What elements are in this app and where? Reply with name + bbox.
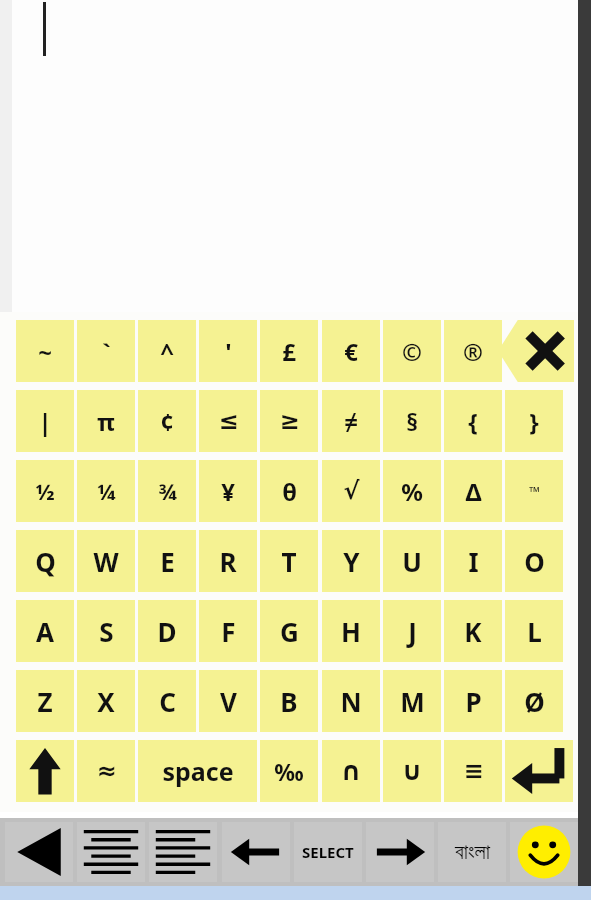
button[interactable]: H [322, 600, 380, 662]
button[interactable]: ≡ [444, 740, 502, 802]
button[interactable]: π [77, 390, 135, 452]
staticText: ∪ [401, 756, 423, 786]
staticText: ¢ [160, 405, 174, 438]
button[interactable]: ≈ [77, 740, 135, 802]
staticText: C [159, 684, 176, 719]
button[interactable]: ¥ [199, 460, 257, 522]
staticText: ≈ [96, 757, 117, 785]
button[interactable]: Δ [444, 460, 502, 522]
button[interactable]: X [77, 670, 135, 732]
button[interactable]: space [138, 740, 257, 802]
staticText: Q [35, 544, 56, 579]
staticText: H [341, 614, 361, 649]
button[interactable]: | [16, 390, 74, 452]
button[interactable]: Align center [77, 822, 145, 882]
button[interactable]: Y [322, 530, 380, 592]
button[interactable]: Z [16, 670, 74, 732]
staticText: } [529, 405, 539, 438]
button[interactable]: € [322, 320, 380, 382]
button[interactable]: F [199, 600, 257, 662]
button[interactable]: θ [260, 460, 318, 522]
staticText: ¥ [221, 475, 235, 508]
button[interactable]: বাংলা [438, 822, 506, 882]
button[interactable]: ¢ [138, 390, 196, 452]
button[interactable]: W [77, 530, 135, 592]
staticText: N [340, 684, 362, 719]
button[interactable]: ∪ [383, 740, 441, 802]
button[interactable]: J [383, 600, 441, 662]
staticText: ‰ [274, 756, 304, 787]
button[interactable]: L [505, 600, 563, 662]
button[interactable] [12, 0, 578, 312]
button[interactable]: ™ [505, 460, 563, 522]
staticText: ≠ [344, 405, 358, 438]
button[interactable]: Align left [149, 822, 217, 882]
staticText: Z [37, 684, 53, 719]
staticText: ¾ [158, 476, 177, 506]
button[interactable]: ‰ [260, 740, 318, 802]
button[interactable]: G [260, 600, 318, 662]
button[interactable]: ® [444, 320, 502, 382]
button[interactable]: Move right [366, 822, 434, 882]
button[interactable]: T [260, 530, 318, 592]
button[interactable]: K [444, 600, 502, 662]
button[interactable]: SELECT [294, 822, 362, 882]
staticText: M [400, 684, 425, 719]
button[interactable]: √ [322, 460, 380, 522]
button[interactable]: ≠ [322, 390, 380, 452]
button[interactable]: U [383, 530, 441, 592]
button[interactable]: ` [77, 320, 135, 382]
staticText: ≥ [279, 407, 300, 435]
button[interactable]: Backspace [498, 320, 574, 382]
staticText: ∩ [340, 756, 362, 786]
button[interactable]: A [16, 600, 74, 662]
button[interactable]: { [444, 390, 502, 452]
button[interactable]: N [322, 670, 380, 732]
staticText: π [97, 405, 115, 438]
button[interactable]: R [199, 530, 257, 592]
button[interactable]: Enter [505, 740, 573, 802]
staticText: B [280, 684, 298, 719]
staticText: ≡ [463, 757, 484, 785]
button[interactable]: ∩ [322, 740, 380, 802]
staticText: ® [463, 335, 483, 368]
button[interactable]: § [383, 390, 441, 452]
button[interactable]: P [444, 670, 502, 732]
button[interactable]: ¼ [77, 460, 135, 522]
button[interactable]: ≤ [199, 390, 257, 452]
button[interactable]: ½ [16, 460, 74, 522]
staticText: ½ [35, 476, 55, 506]
staticText: £ [282, 335, 296, 368]
button[interactable]: Q [16, 530, 74, 592]
staticText: S [99, 614, 114, 649]
button[interactable]: Previous [5, 822, 73, 882]
button[interactable]: ≥ [260, 390, 318, 452]
button[interactable]: D [138, 600, 196, 662]
button[interactable]: V [199, 670, 257, 732]
button[interactable]: M [383, 670, 441, 732]
button[interactable]: B [260, 670, 318, 732]
button[interactable]: ^ [138, 320, 196, 382]
button[interactable]: © [383, 320, 441, 382]
button[interactable]: Emoji [510, 822, 578, 882]
button[interactable]: I [444, 530, 502, 592]
staticText: Ø [524, 684, 545, 719]
button[interactable]: Shift [16, 740, 74, 802]
button[interactable]: C [138, 670, 196, 732]
button[interactable]: S [77, 600, 135, 662]
button[interactable]: % [383, 460, 441, 522]
staticText: T [281, 544, 297, 579]
button[interactable]: ' [199, 320, 257, 382]
button[interactable]: } [505, 390, 563, 452]
staticText: Y [343, 544, 360, 579]
staticText: F [221, 614, 236, 649]
button[interactable]: ¾ [138, 460, 196, 522]
button[interactable]: Move left [222, 822, 290, 882]
staticText: U [402, 544, 422, 579]
button[interactable]: ~ [16, 320, 74, 382]
button[interactable]: O [505, 530, 563, 592]
button[interactable]: E [138, 530, 196, 592]
button[interactable]: Ø [505, 670, 563, 732]
staticText: SELECT [302, 842, 354, 862]
button[interactable]: £ [260, 320, 318, 382]
